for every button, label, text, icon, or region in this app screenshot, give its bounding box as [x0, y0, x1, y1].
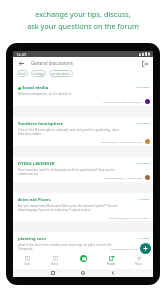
staticText: planting corn — [18, 236, 47, 242]
button[interactable]: New discussion — [140, 243, 151, 254]
staticText: Social media — [22, 85, 49, 91]
button[interactable]: Log out — [139, 58, 150, 69]
button[interactable]: Home — [69, 252, 97, 269]
staticText: 4 ANSWERS — [136, 121, 149, 124]
staticText: Last message 2 hours ago by Justin — [103, 100, 143, 103]
staticText: Southern hemisphere — [18, 121, 64, 127]
staticText: food — [19, 72, 26, 76]
staticText: Last message Jun 29, 2021 by Mary — [110, 247, 150, 250]
button[interactable]: Menu — [125, 252, 153, 269]
staticText: Menu — [135, 262, 143, 266]
staticText: Last message 11 hours ago by Karen — [101, 140, 143, 143]
staticText: 1 ANSWER — [137, 197, 149, 200]
staticText: Your lavender look? it all depends on th… — [18, 168, 123, 176]
staticText: General discussions — [31, 60, 73, 66]
button[interactable]: Back — [16, 58, 27, 69]
staticText: exchange your tips, discuss, — [35, 9, 131, 19]
staticText: 4 ANSWERS — [136, 161, 149, 164]
button[interactable]: Social media — [13, 81, 153, 106]
button[interactable]: ecology — [31, 70, 46, 77]
staticText: ask your questions on the forum — [27, 21, 139, 31]
button[interactable]: DYING LAVENDER — [13, 157, 153, 182]
staticText: what is the best inter months and moon s… — [18, 243, 123, 251]
staticText: Are you aware that Moon and Mars joins t… — [18, 204, 123, 212]
staticText: 1 ANSWER — [137, 236, 149, 239]
staticText: Notes — [51, 262, 59, 266]
button[interactable]: Tools — [13, 252, 41, 269]
staticText: I live in the N hemisphere calendar, was… — [18, 128, 123, 136]
staticText: 3 ANSWERS — [136, 85, 149, 88]
button[interactable]: Forum — [97, 252, 125, 269]
button[interactable]: Southern hemisphere — [13, 117, 153, 146]
staticText: All these companies, so it's hard to it — [18, 92, 123, 96]
staticText: ecology — [33, 72, 44, 76]
staticText: Last message Jun 29, 2021 by Robert — [108, 216, 150, 219]
staticText: permaculture — [51, 72, 71, 76]
button[interactable]: planting corn — [13, 232, 153, 252]
staticText: 14:49 — [16, 52, 27, 57]
button[interactable]: permaculture — [49, 70, 73, 77]
staticText: Forum — [107, 262, 116, 266]
button[interactable]: food — [17, 70, 28, 77]
staticText: DYING LAVENDER — [18, 161, 55, 167]
button[interactable]: Aries not Pisces — [13, 193, 153, 221]
staticText: Aries not Pisces — [18, 197, 51, 203]
staticText: Last message Jul 17, 2021 by Peter — [104, 176, 143, 179]
button[interactable]: Notes — [41, 252, 69, 269]
staticText: Tools — [24, 262, 31, 266]
